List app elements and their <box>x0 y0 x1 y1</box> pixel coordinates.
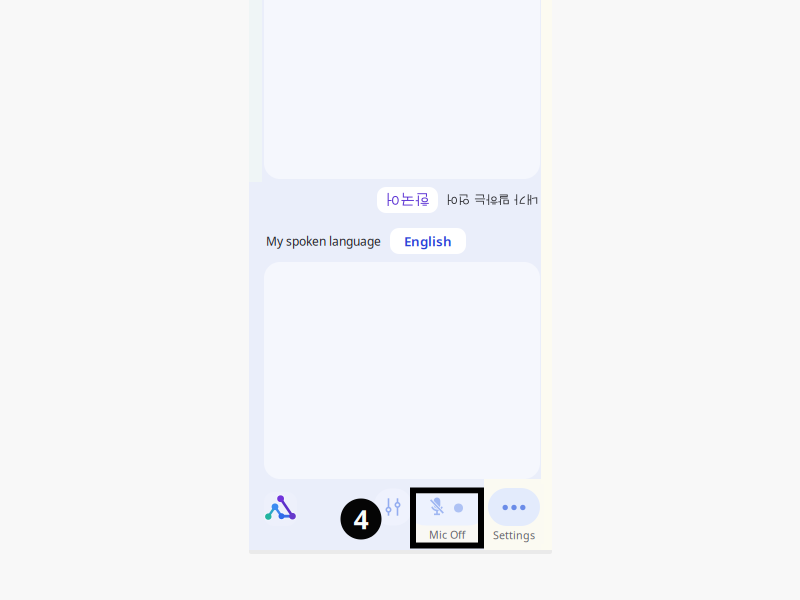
button[interactable]: Home <box>259 488 303 532</box>
staticText: Settings <box>493 528 535 542</box>
button[interactable]: Mic Off <box>410 487 484 548</box>
button[interactable]: 한국어 <box>377 187 438 213</box>
staticText: Mic Off <box>429 527 465 542</box>
staticText: 한국어 <box>385 191 430 209</box>
staticText: My spoken language <box>266 233 381 249</box>
button[interactable]: Step 4 <box>340 498 381 539</box>
staticText: 내가 말하는 언어 <box>446 193 538 207</box>
button[interactable]: Settings <box>484 484 544 544</box>
button[interactable]: Audio levels <box>374 488 412 525</box>
staticText: English <box>404 232 452 250</box>
staticText: 4 <box>353 501 368 537</box>
button[interactable]: English <box>390 228 466 254</box>
